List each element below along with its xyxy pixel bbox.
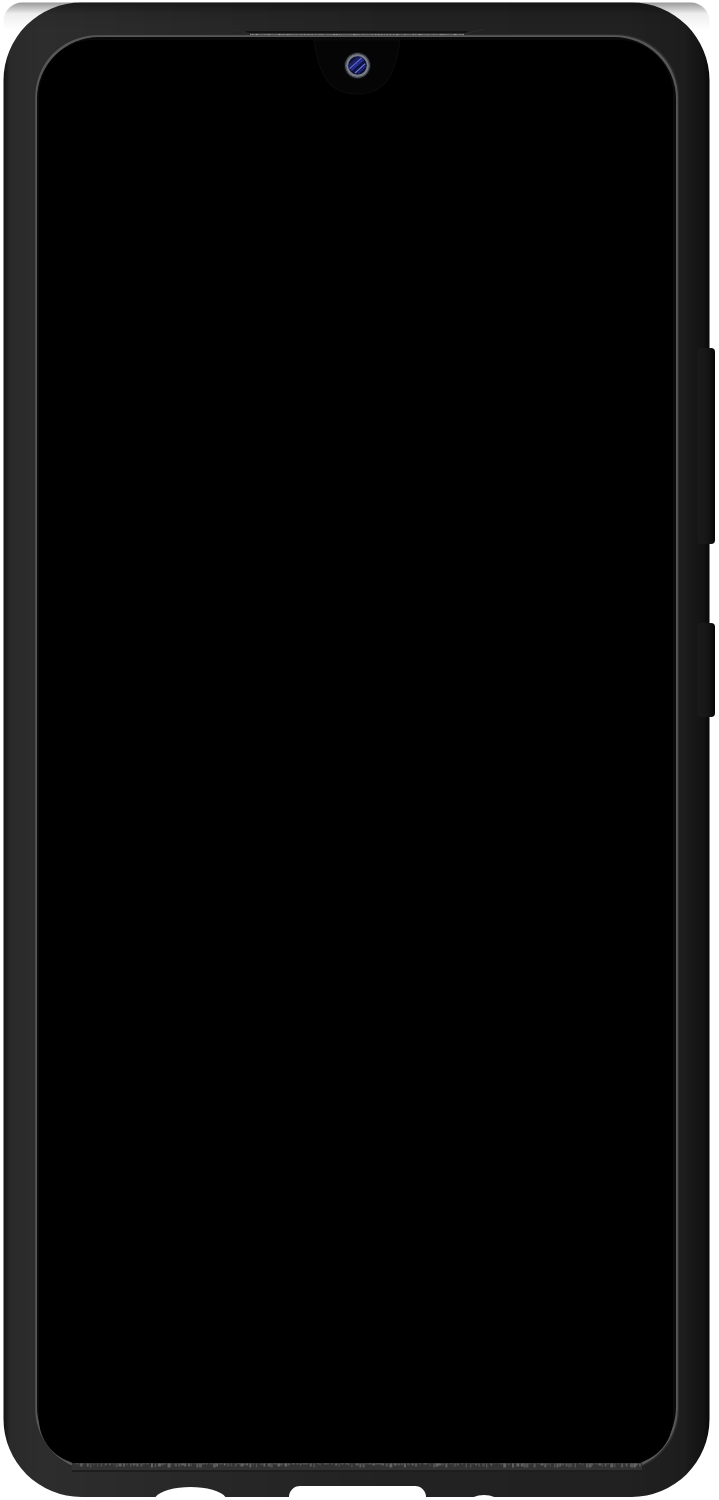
button[interactable]: Power button xyxy=(697,348,715,544)
button[interactable]: Earpiece speaker xyxy=(236,26,480,40)
button[interactable]: Speaker xyxy=(154,1484,227,1500)
button[interactable]: Charging port xyxy=(289,1484,426,1500)
button[interactable]: Phone display xyxy=(39,40,673,1464)
button[interactable]: Front camera xyxy=(343,51,372,80)
button[interactable]: Volume button xyxy=(697,623,715,717)
